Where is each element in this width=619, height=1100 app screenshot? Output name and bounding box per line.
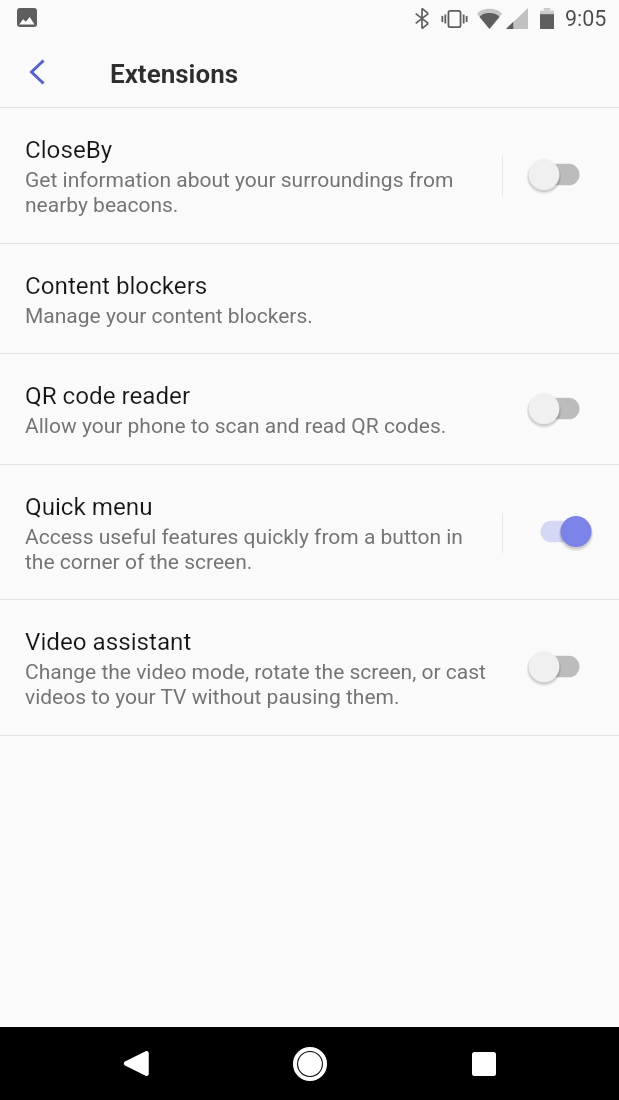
staticText: Allow your phone to scan and read QR cod… [25, 414, 447, 439]
button[interactable]: Video assistant [0, 600, 619, 736]
staticText: 9:05 [565, 6, 607, 31]
button[interactable]: Toggle Video assistant [502, 600, 619, 736]
button[interactable]: Back [99, 1027, 172, 1100]
staticText: Manage your content blockers. [25, 304, 313, 329]
button[interactable]: Toggle CloseBy [502, 108, 619, 244]
button[interactable]: CloseBy [0, 108, 619, 244]
staticText: Change the video mode, rotate the screen… [25, 660, 493, 710]
staticText: Extensions [110, 59, 239, 89]
button[interactable]: QR code reader [0, 354, 619, 465]
staticText: QR code reader [25, 382, 191, 410]
staticText: CloseBy [25, 136, 113, 164]
staticText: Content blockers [25, 272, 208, 300]
staticText: Access useful features quickly from a bu… [25, 525, 493, 575]
staticText: Quick menu [25, 493, 153, 521]
staticText: Get information about your surroundings … [25, 168, 493, 218]
staticText: Video assistant [25, 628, 192, 656]
button[interactable]: Toggle Quick menu [502, 465, 619, 600]
button[interactable]: Recent apps [447, 1027, 520, 1100]
button[interactable]: Content blockers [0, 244, 619, 354]
button[interactable]: Toggle QR code reader [502, 354, 619, 465]
button[interactable]: Home [273, 1027, 346, 1100]
button[interactable]: Back [13, 48, 61, 96]
button[interactable]: Quick menu [0, 465, 619, 600]
